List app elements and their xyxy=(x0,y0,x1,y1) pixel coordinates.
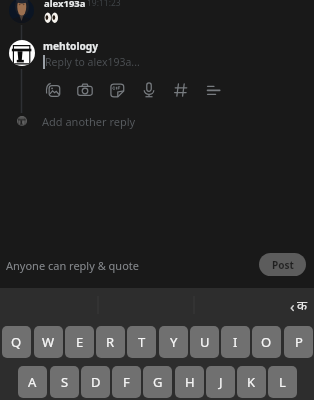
button[interactable]: J xyxy=(206,366,235,398)
button[interactable]: P xyxy=(284,326,313,358)
button[interactable]: S xyxy=(50,366,79,398)
staticText: A xyxy=(28,373,37,391)
button[interactable]: D xyxy=(81,366,110,398)
staticText: F xyxy=(123,373,130,391)
staticText: Reply to alex193a... xyxy=(45,55,140,69)
button[interactable]: Voice xyxy=(138,79,160,101)
button[interactable]: T xyxy=(127,326,156,358)
staticText: T xyxy=(138,333,146,351)
staticText: alex193a xyxy=(44,0,86,10)
button[interactable]: O xyxy=(252,326,281,358)
staticText: Q xyxy=(11,333,22,351)
button[interactable]: Y xyxy=(159,326,188,358)
button[interactable]: E xyxy=(65,326,94,358)
button[interactable]: W xyxy=(34,326,63,358)
button[interactable]: mehtology profile photo xyxy=(9,40,35,66)
staticText: I xyxy=(233,333,238,351)
button[interactable]: Anyone can reply & quote xyxy=(6,258,139,273)
button[interactable]: K xyxy=(237,366,266,398)
button[interactable]: A xyxy=(18,366,47,398)
button[interactable]: L xyxy=(268,366,297,398)
staticText: L xyxy=(279,373,286,391)
button[interactable]: R xyxy=(96,326,125,358)
button[interactable]: Q xyxy=(2,326,31,358)
button[interactable]: Camera xyxy=(74,79,96,101)
staticText: G xyxy=(153,373,163,391)
staticText: W xyxy=(42,333,55,351)
staticText: क xyxy=(297,296,307,314)
staticText: ‹ xyxy=(290,296,295,316)
staticText: D xyxy=(91,373,101,391)
button[interactable]: Add another reply xyxy=(42,114,136,129)
button[interactable]: H xyxy=(175,366,204,398)
staticText: Post xyxy=(272,258,294,272)
button[interactable]: G xyxy=(143,366,172,398)
staticText: H xyxy=(185,373,195,391)
staticText: U xyxy=(200,333,210,351)
button[interactable]: I xyxy=(221,326,250,358)
staticText: R xyxy=(106,333,115,351)
staticText: P xyxy=(295,333,303,351)
button[interactable]: F xyxy=(112,366,141,398)
button[interactable]: alex193a profile photo xyxy=(9,0,34,23)
button[interactable]: U xyxy=(190,326,219,358)
button[interactable]: Formatting xyxy=(202,79,224,101)
button[interactable]: Add GIF xyxy=(106,79,128,101)
staticText: 19:11:23 xyxy=(87,0,121,9)
button[interactable]: Hashtag xyxy=(170,79,192,101)
staticText: E xyxy=(76,333,84,351)
staticText: O xyxy=(261,333,272,351)
staticText: K xyxy=(247,373,256,391)
button[interactable]: Post xyxy=(259,253,306,276)
staticText: J xyxy=(219,373,223,391)
staticText: S xyxy=(61,373,69,391)
staticText: mehtology xyxy=(43,39,99,53)
button[interactable]: Add photo xyxy=(42,79,64,101)
staticText: Y xyxy=(170,333,178,351)
